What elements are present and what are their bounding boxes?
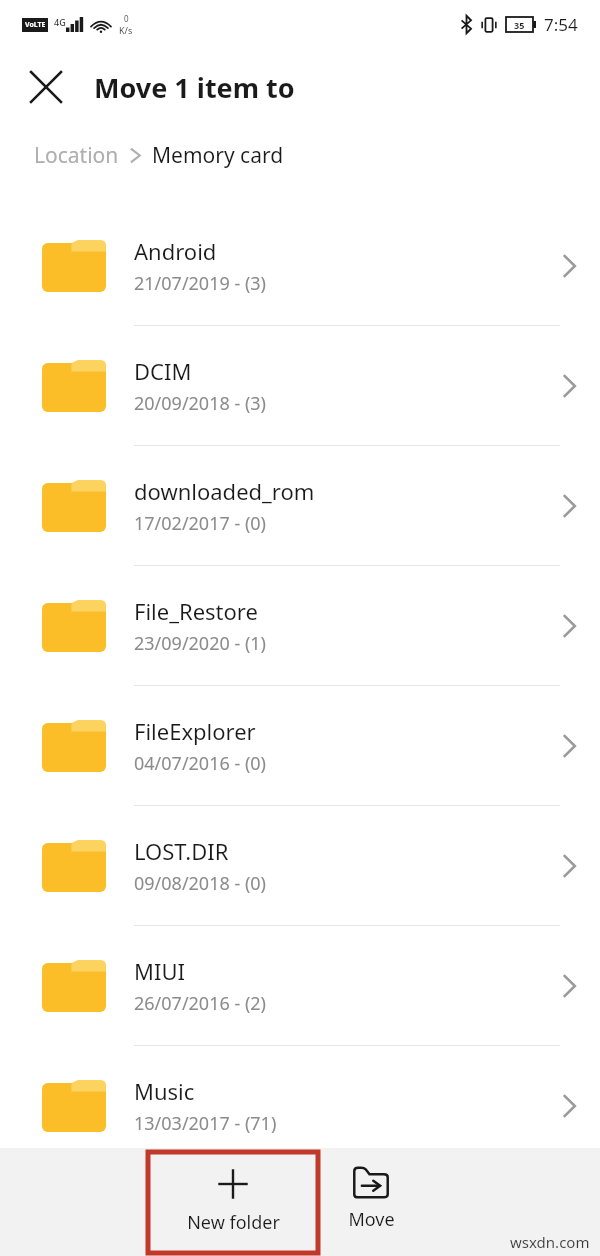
staticText: K/s xyxy=(119,24,133,36)
button[interactable]: Music xyxy=(0,1046,600,1166)
staticText: wsxdn.com xyxy=(510,1232,590,1252)
staticText: 0 xyxy=(124,13,129,24)
button[interactable]: FileExplorer xyxy=(0,686,600,806)
staticText: New folder xyxy=(187,1210,280,1235)
staticText: 13/03/2017 - (71) xyxy=(134,1111,277,1136)
staticText: Music xyxy=(134,1076,195,1106)
staticText: 21/07/2019 - (3) xyxy=(134,271,267,296)
button[interactable]: LOST.DIR xyxy=(0,806,600,926)
button[interactable]: DCIM xyxy=(0,326,600,446)
staticText: 7:54 xyxy=(544,13,578,36)
button[interactable]: MIUI xyxy=(0,926,600,1046)
button[interactable]: Location xyxy=(34,141,119,170)
staticText: 35 xyxy=(514,19,525,31)
staticText: DCIM xyxy=(134,356,192,386)
staticText: 04/07/2016 - (0) xyxy=(134,751,267,776)
staticText: FileExplorer xyxy=(134,716,256,746)
staticText: downloaded_rom xyxy=(134,476,315,506)
staticText: VoLTE xyxy=(25,20,46,30)
staticText: LOST.DIR xyxy=(134,836,229,866)
button[interactable]: File_Restore xyxy=(0,566,600,686)
button[interactable]: Close xyxy=(18,59,74,115)
button[interactable]: New folder xyxy=(148,1152,318,1253)
staticText: 26/07/2016 - (2) xyxy=(134,991,267,1016)
staticText: 09/08/2018 - (0) xyxy=(134,871,267,896)
staticText: 20/09/2018 - (3) xyxy=(134,391,267,416)
staticText: Android xyxy=(134,236,217,266)
staticText: Move 1 item to xyxy=(94,69,295,106)
button[interactable]: Move xyxy=(321,1152,421,1253)
staticText: 4G xyxy=(54,16,66,28)
button[interactable]: Memory card xyxy=(152,141,284,170)
staticText: 23/09/2020 - (1) xyxy=(134,631,267,656)
staticText: Move xyxy=(348,1207,395,1232)
staticText: 17/02/2017 - (0) xyxy=(134,511,267,536)
button[interactable]: Android xyxy=(0,206,600,326)
staticText: MIUI xyxy=(134,956,185,986)
staticText: File_Restore xyxy=(134,596,258,626)
button[interactable]: downloaded_rom xyxy=(0,446,600,566)
